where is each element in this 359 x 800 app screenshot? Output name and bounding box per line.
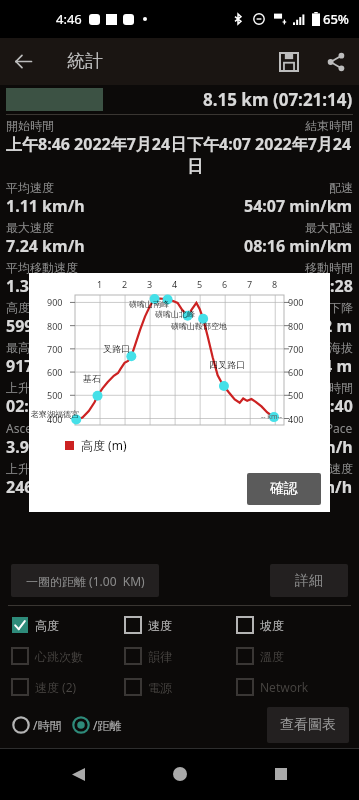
staticText: 磺嘴山鞍部空地 [171,321,227,331]
staticText: 900 [288,296,304,308]
button[interactable]: /時間 [12,716,62,734]
staticText: 599.83 m [6,315,77,337]
staticText: 韻律 [148,649,172,664]
staticText: 結束時間 [305,118,353,133]
staticText: 6.42 km/h [274,436,353,458]
button[interactable]: 速度 [125,617,237,633]
staticText: 7.24 km/h [6,235,85,257]
staticText: 900 [47,296,63,308]
staticText: 3 [147,278,153,290]
button[interactable]: Recent apps [258,751,304,797]
staticText: 400 [288,413,304,425]
staticText: 一圈的距離 (1.00 KM) [26,573,145,589]
staticText: 05:59:28 [289,275,353,297]
staticText: 1 [97,278,103,290]
button[interactable]: Save [265,38,312,85]
staticText: 溫度 [260,649,284,664]
staticText: 基石 [83,373,101,384]
staticText: 917.11 m [6,355,77,377]
staticText: 54:07 min/km [244,195,353,217]
button[interactable]: 查看圖表 [267,707,349,743]
button[interactable]: 電源 [125,679,237,695]
staticText: 400 [47,413,63,425]
staticText: 2 [122,278,128,290]
staticText: 4:46 [56,10,82,28]
staticText: 800 [288,320,304,332]
staticText: 8 [272,278,278,290]
button[interactable]: 韻律 [125,648,237,664]
staticText: 四叉路口 [209,359,245,370]
staticText: 308.35 m/h [265,476,353,498]
staticText: 600 [47,366,63,378]
staticText: 02:41:05 [6,395,70,417]
staticText: 02:18:40 [289,395,353,417]
staticText: 最大速度 [6,220,54,235]
staticText: 381.44 m [282,355,353,377]
staticText: 叉路口 [103,343,130,354]
staticText: 8.15 km (07:21:14) [203,88,353,111]
staticText: 高度 (m) [81,437,127,453]
button[interactable]: 坡度 [237,617,349,633]
staticText: 電源 [148,680,172,695]
staticText: 統計 [67,50,103,73]
button[interactable]: 心跳次數 [12,648,125,664]
staticText: 最大配速 [305,220,353,235]
staticText: 上升速度 [6,461,54,476]
staticText: /時間 [33,717,62,733]
staticText: 700 [288,343,304,355]
staticText: 604.12 m [282,315,353,337]
staticText: 下午4:07 2022年7月24日 [187,133,353,177]
staticText: 速度 [148,618,172,633]
staticText: /距離 [93,717,122,733]
button[interactable]: Back [55,751,101,797]
staticText: 高度上升 [6,300,54,315]
staticText: 坡度 [260,618,284,633]
staticText: 上升時間 [6,380,54,395]
staticText: 3.97 km/h [6,436,85,458]
staticText: 6 [222,278,228,290]
staticText: 確認 [270,480,298,498]
staticText: 1.36 km/h [6,275,85,297]
button[interactable]: 一圈的距離 (1.00 KM) [11,564,159,597]
button[interactable]: Back [0,38,47,85]
staticText: 800 [47,320,63,332]
staticText: 配速 [329,180,353,195]
staticText: 5 [197,278,203,290]
staticText: 最高海拔 [6,340,54,355]
button[interactable]: 速度 (2) [12,679,125,695]
staticText: 平均移動速度 [6,260,78,275]
staticText: 4 [172,278,178,290]
staticText: 08:16 min/km [244,235,353,257]
staticText: 500 [47,389,63,401]
staticText: 上午8:46 2022年7月24日 [6,133,187,155]
staticText: 磺嘴山北峰 [155,309,195,319]
button[interactable]: 高度 [12,617,125,633]
staticText: 查看圖表 [280,716,336,734]
staticText: 磺嘴山南峰 [129,299,169,309]
button[interactable]: 詳細 [270,564,348,597]
staticText: 高度下降 [305,300,353,315]
button[interactable]: Network [237,679,349,695]
button[interactable]: 確認 [247,473,321,505]
staticText: -- km-- [261,412,283,422]
staticText: 246.29 m/h [6,476,94,498]
staticText: 最低海拔 [305,340,353,355]
staticText: 速度 (2) [35,679,77,695]
staticText: 移動時間 [305,260,353,275]
staticText: 高度 [35,618,59,633]
button[interactable]: 溫度 [237,648,349,664]
staticText: 下降速度 [305,461,353,476]
staticText: 7 [247,278,253,290]
button[interactable]: Share [312,38,359,85]
staticText: 開始時間 [6,118,54,133]
staticText: Descent Pace [277,420,353,436]
staticText: 500 [288,389,304,401]
staticText: 心跳次數 [35,649,83,664]
staticText: Network [260,679,309,695]
staticText: 1.11 km/h [6,195,85,217]
button[interactable]: Home [157,751,203,797]
staticText: 700 [47,343,63,355]
button[interactable]: /距離 [72,716,122,734]
staticText: 平均速度 [6,180,54,195]
staticText: Ascent Pace [6,420,74,436]
